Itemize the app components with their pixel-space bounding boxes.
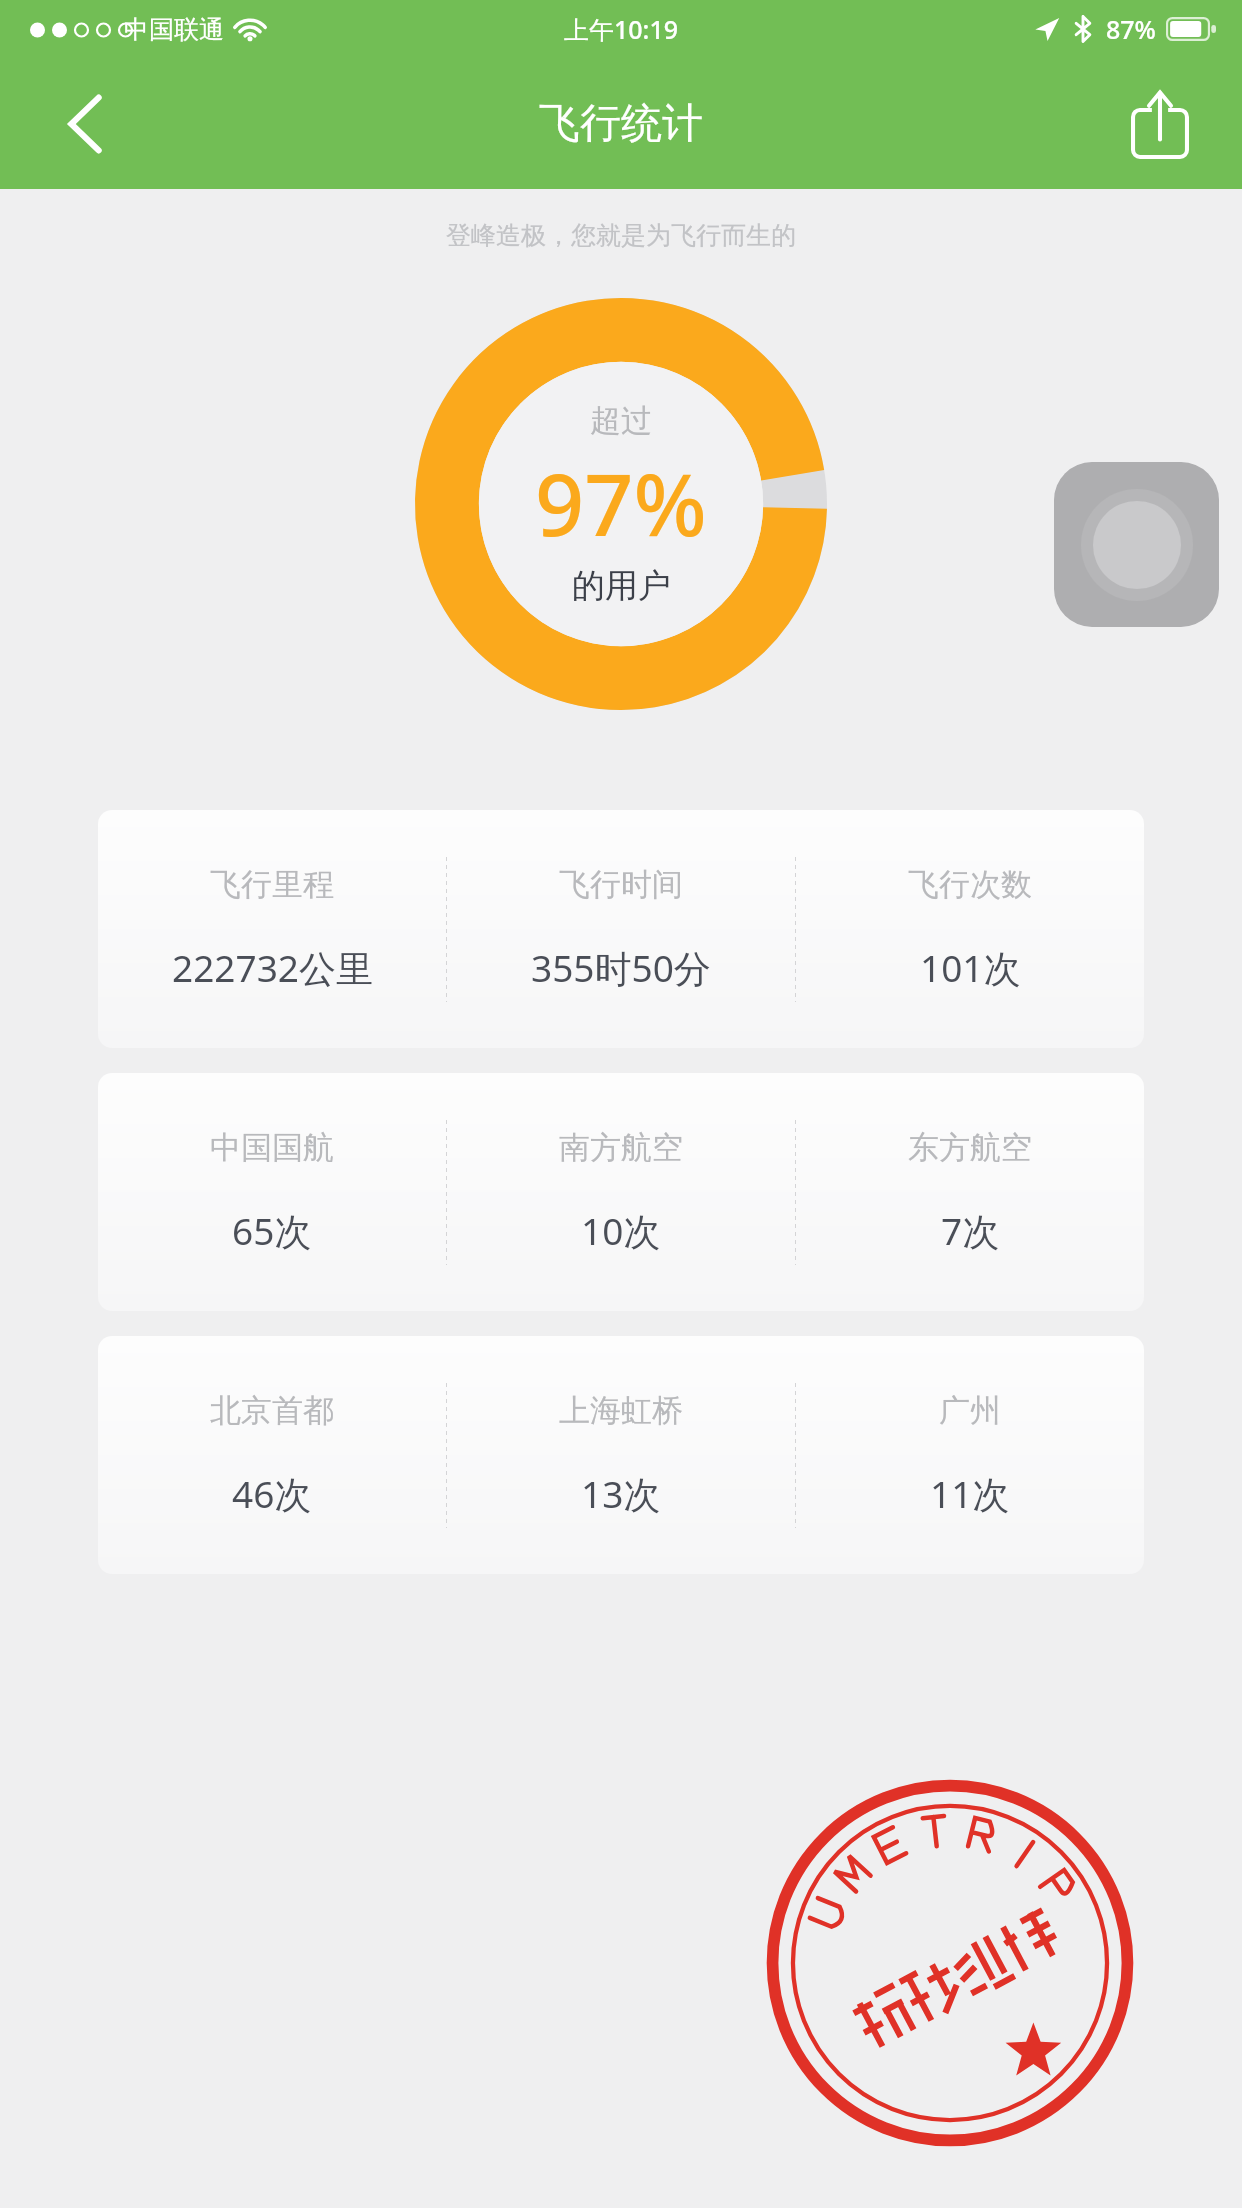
button[interactable]: 飞行里程: [98, 810, 1144, 1048]
button[interactable]: Back: [30, 69, 140, 179]
staticText: 南方航空: [559, 1128, 683, 1167]
staticText: 飞行统计: [539, 98, 703, 150]
button[interactable]: 北京首都: [98, 1336, 1144, 1574]
staticText: 10次: [581, 1205, 661, 1256]
staticText: 65次: [232, 1205, 312, 1256]
staticText: 登峰造极，您就是为飞行而生的: [0, 220, 1242, 251]
staticText: 上海虹桥: [559, 1391, 683, 1430]
staticText: 飞行里程: [210, 865, 334, 904]
button[interactable]: 中国国航: [98, 1073, 1144, 1311]
staticText: 355时50分: [531, 942, 711, 993]
button[interactable]: AssistiveTouch: [1054, 462, 1219, 627]
staticText: 上午10:19: [564, 12, 679, 46]
staticText: 87%: [1106, 12, 1156, 46]
staticText: 46次: [232, 1468, 312, 1519]
staticText: 飞行次数: [908, 865, 1032, 904]
staticText: 广州: [939, 1391, 1001, 1430]
staticText: 11次: [930, 1468, 1010, 1519]
staticText: 13次: [581, 1468, 661, 1519]
button[interactable]: Share: [1100, 64, 1220, 184]
staticText: 超过: [590, 401, 652, 440]
staticText: 101次: [920, 942, 1021, 993]
staticText: 北京首都: [210, 1391, 334, 1430]
staticText: 飞行时间: [559, 865, 683, 904]
staticText: 中国国航: [210, 1128, 334, 1167]
staticText: 97%: [535, 444, 707, 561]
staticText: 7次: [941, 1205, 1000, 1256]
staticText: 中国联通: [124, 14, 224, 45]
staticText: 的用户: [572, 565, 671, 607]
staticText: 东方航空: [908, 1128, 1032, 1167]
staticText: 222732公里: [172, 942, 373, 993]
